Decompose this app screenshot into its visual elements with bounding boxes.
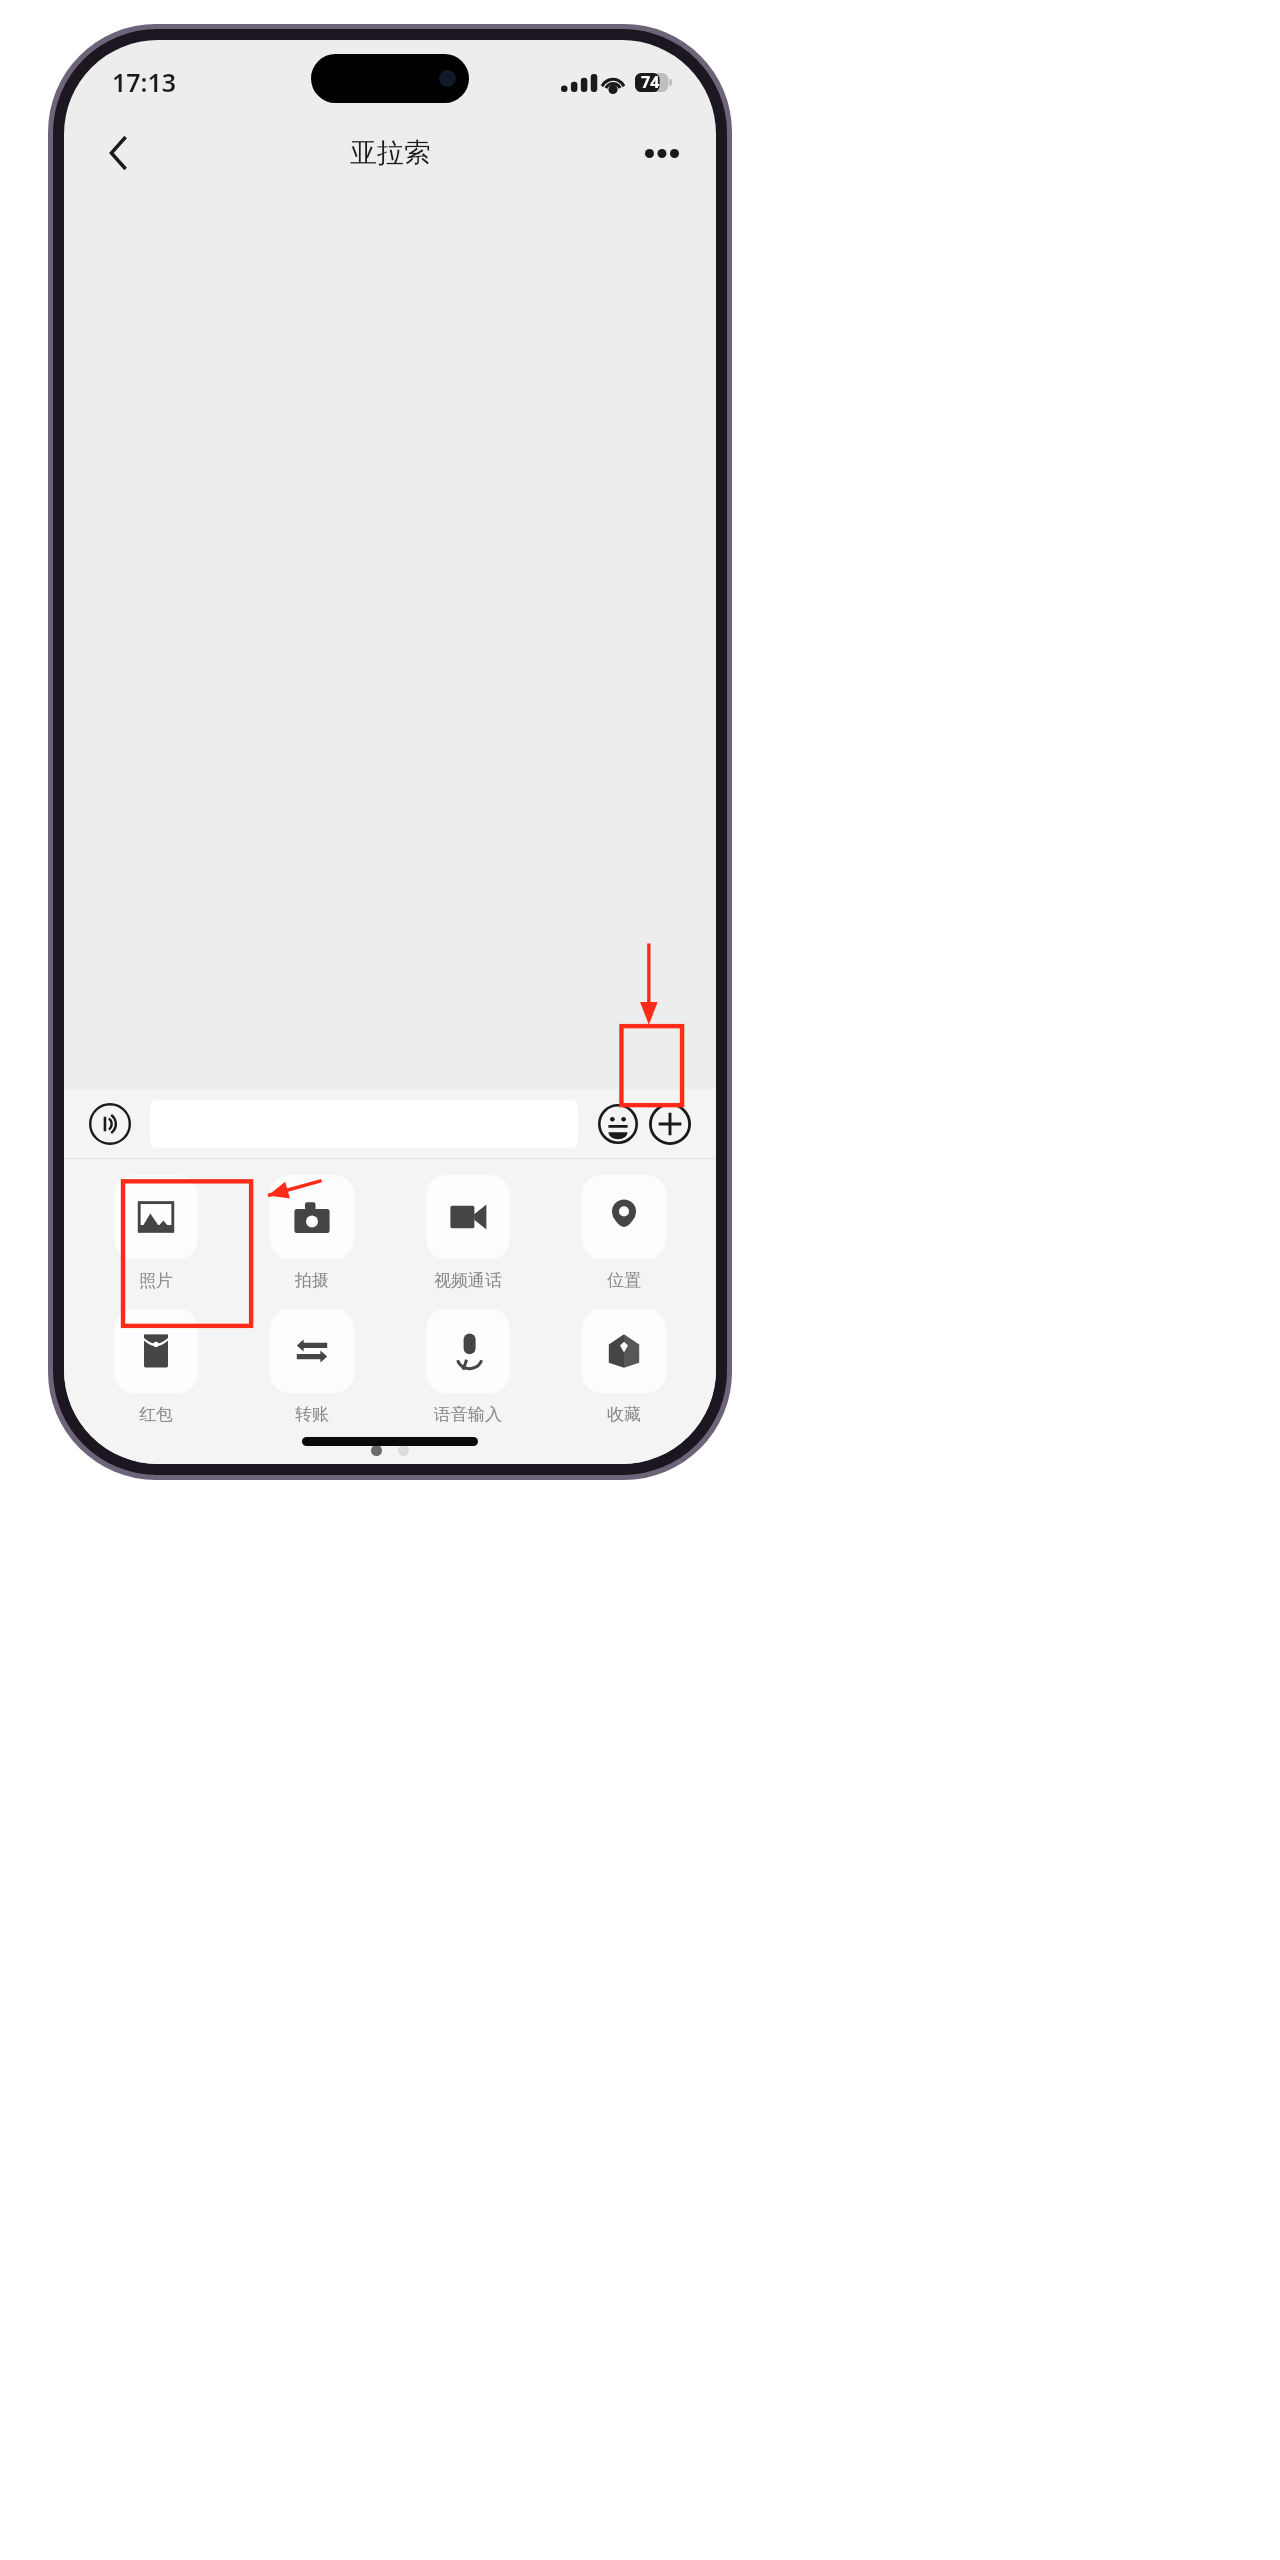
button[interactable]: 视频通话 — [404, 1175, 532, 1291]
staticText: 语音输入 — [434, 1404, 502, 1425]
button[interactable]: Emoji — [592, 1098, 644, 1150]
button[interactable]: 红包 — [92, 1309, 220, 1425]
button[interactable]: More options — [634, 125, 690, 181]
staticText: 拍摄 — [295, 1270, 329, 1291]
staticText: 位置 — [607, 1270, 641, 1291]
staticText: 亚拉索 — [350, 136, 431, 170]
staticText: 视频通话 — [434, 1270, 502, 1291]
staticText: 收藏 — [607, 1404, 641, 1425]
button[interactable]: 照片 — [92, 1175, 220, 1291]
button[interactable]: 拍摄 — [248, 1175, 376, 1291]
staticText: 转账 — [295, 1404, 329, 1425]
button[interactable]: 语音输入 — [404, 1309, 532, 1425]
staticText: 74 — [641, 71, 660, 93]
button[interactable]: 位置 — [560, 1175, 688, 1291]
staticText: 照片 — [139, 1270, 173, 1291]
staticText: 红包 — [139, 1404, 173, 1425]
staticText: 17:13 — [112, 65, 177, 99]
button[interactable]: Voice message — [84, 1098, 136, 1150]
button[interactable]: Back — [90, 125, 146, 181]
button[interactable]: 收藏 — [560, 1309, 688, 1425]
button[interactable]: 转账 — [248, 1309, 376, 1425]
button[interactable]: More functions — [644, 1098, 696, 1150]
